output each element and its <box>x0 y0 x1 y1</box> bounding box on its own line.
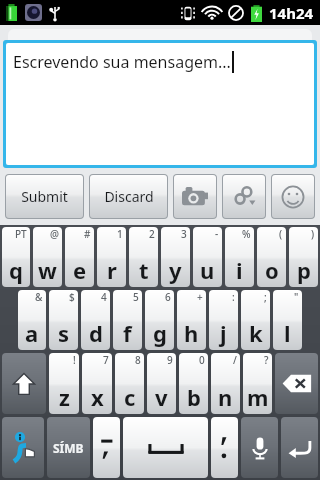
button[interactable]: # <box>65 227 94 287</box>
staticText: : <box>232 290 235 304</box>
button[interactable]: Discard <box>90 175 167 218</box>
staticText: 6 <box>165 290 171 304</box>
staticText: ; <box>264 290 267 304</box>
staticText: i <box>236 255 243 285</box>
button[interactable]: % <box>225 227 254 287</box>
button[interactable]: 5 <box>113 290 142 350</box>
staticText: ? <box>264 353 269 367</box>
button[interactable]: PT <box>2 227 30 287</box>
button[interactable]: ! <box>49 353 79 414</box>
staticText: e <box>73 255 87 285</box>
staticText: d <box>89 318 103 348</box>
staticText: % <box>242 227 251 241</box>
staticText: c <box>124 382 136 412</box>
staticText: j <box>220 318 227 348</box>
button[interactable]: ) <box>289 227 318 287</box>
button[interactable]: Camera <box>174 175 216 218</box>
button[interactable]: ; <box>241 290 270 350</box>
staticText: 9 <box>167 353 173 367</box>
staticText: o <box>265 255 279 285</box>
staticText: $ <box>69 290 75 304</box>
staticText: ) <box>311 227 315 241</box>
staticText: @ <box>50 227 59 241</box>
staticText: Submit <box>21 187 68 206</box>
button[interactable]: $ <box>49 290 78 350</box>
staticText: w <box>38 255 57 285</box>
button[interactable]: 8 <box>115 353 144 414</box>
staticText: 4 <box>101 290 107 304</box>
button[interactable]: 7 <box>82 353 112 414</box>
staticText: f <box>123 318 132 348</box>
staticText: / <box>233 353 237 367</box>
button[interactable]: ( <box>257 227 286 287</box>
staticText: m <box>247 382 269 412</box>
staticText: y <box>169 255 182 285</box>
staticText: ! <box>73 353 76 367</box>
button[interactable]: 2 <box>129 227 158 287</box>
staticText: 0 <box>199 353 205 367</box>
staticText: z <box>59 382 70 412</box>
button[interactable]: 9 <box>147 353 176 414</box>
staticText: r <box>107 255 117 285</box>
staticText: b <box>187 382 201 412</box>
staticText: x <box>91 382 104 412</box>
staticText: 14h24 <box>269 3 314 23</box>
staticText: s <box>58 318 70 348</box>
staticText: 5 <box>133 290 139 304</box>
button[interactable]: Emoticon <box>272 175 314 218</box>
staticText: Escrevendo sua mensagem... <box>13 51 231 73</box>
staticText: PT <box>15 227 27 241</box>
staticText: 3 <box>181 227 187 241</box>
staticText: Discard <box>104 187 154 206</box>
button[interactable]: : <box>209 290 238 350</box>
staticText: ( <box>279 227 283 241</box>
staticText: SÍMB <box>53 440 84 456</box>
staticText: 2 <box>149 227 155 241</box>
staticText: h <box>184 318 199 348</box>
button[interactable]: Escrevendo sua mensagem... <box>6 43 314 165</box>
staticText: 1 <box>117 227 123 241</box>
button[interactable]: + <box>177 290 206 350</box>
button[interactable]: Space <box>123 417 208 478</box>
button[interactable]: Shift <box>2 353 46 414</box>
button[interactable]: Voice input <box>241 417 278 478</box>
staticText: l <box>284 318 291 348</box>
button[interactable]: Swype menu <box>2 417 44 478</box>
button[interactable]: Attach link <box>223 175 265 218</box>
staticText: " <box>294 290 299 304</box>
button[interactable]: 4 <box>81 290 110 350</box>
button[interactable]: Apostrophe period <box>211 417 238 478</box>
button[interactable]: Submit <box>6 175 83 218</box>
staticText: t <box>139 255 149 285</box>
staticText: u <box>200 255 215 285</box>
button[interactable]: Dash comma <box>93 417 120 478</box>
staticText: & <box>35 290 43 304</box>
staticText: - <box>215 227 219 241</box>
staticText: 7 <box>103 353 109 367</box>
staticText: + <box>197 290 203 304</box>
staticText: q <box>9 255 23 285</box>
button[interactable]: Enter <box>281 417 318 478</box>
button[interactable]: Backspace <box>275 353 318 414</box>
staticText: n <box>218 382 233 412</box>
button[interactable]: 1 <box>97 227 126 287</box>
staticText: p <box>297 255 311 285</box>
staticText: a <box>25 318 39 348</box>
button[interactable]: SÍMB <box>47 417 90 478</box>
staticText: 8 <box>135 353 141 367</box>
staticText: # <box>84 227 91 241</box>
button[interactable]: " <box>273 290 302 350</box>
button[interactable]: / <box>211 353 240 414</box>
staticText: k <box>249 318 263 348</box>
button[interactable]: 6 <box>145 290 174 350</box>
staticText: g <box>153 318 167 348</box>
button[interactable]: ? <box>243 353 272 414</box>
button[interactable]: @ <box>33 227 62 287</box>
button[interactable]: 3 <box>161 227 190 287</box>
button[interactable]: & <box>18 290 46 350</box>
button[interactable]: 0 <box>179 353 208 414</box>
staticText: v <box>155 382 168 412</box>
button[interactable]: - <box>193 227 222 287</box>
